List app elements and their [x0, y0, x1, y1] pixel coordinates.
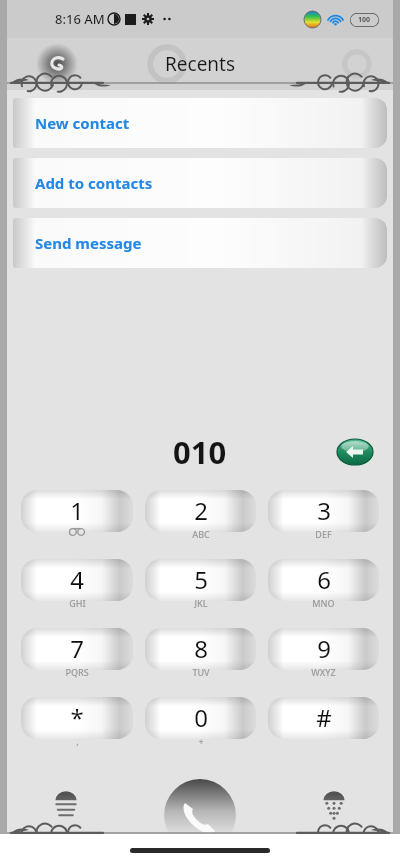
- staticText: 8:16 AM: [55, 10, 105, 28]
- button[interactable]: Backspace: [337, 439, 373, 465]
- staticText: 010: [173, 431, 227, 473]
- staticText: 2: [194, 494, 208, 527]
- button[interactable]: Send message: [13, 218, 387, 268]
- staticText: +: [198, 735, 204, 747]
- staticText: ABC: [192, 528, 210, 540]
- staticText: 100: [358, 15, 371, 25]
- button[interactable]: 5: [145, 559, 256, 611]
- staticText: TUV: [192, 666, 210, 678]
- staticText: *: [70, 701, 84, 734]
- staticText: JKL: [194, 597, 208, 609]
- staticText: 6: [317, 563, 331, 596]
- staticText: Send message: [35, 233, 142, 253]
- staticText: 4: [70, 563, 84, 596]
- staticText: 9: [317, 632, 331, 665]
- button[interactable]: 9: [268, 628, 379, 680]
- button[interactable]: 4: [21, 559, 133, 611]
- staticText: MNO: [312, 597, 335, 609]
- staticText: WXYZ: [311, 666, 336, 678]
- staticText: PQRS: [65, 666, 89, 678]
- staticText: #: [316, 701, 332, 734]
- staticText: Recents: [165, 51, 236, 77]
- button[interactable]: 0: [145, 697, 256, 749]
- button[interactable]: #: [268, 697, 379, 749]
- staticText: 7: [70, 632, 84, 665]
- button[interactable]: 3: [268, 490, 379, 542]
- staticText: 8: [194, 632, 208, 665]
- staticText: Add to contacts: [35, 173, 153, 193]
- button[interactable]: Add to contacts: [13, 158, 387, 208]
- button[interactable]: 7: [21, 628, 133, 680]
- button[interactable]: 6: [268, 559, 379, 611]
- button[interactable]: Keypad: [317, 790, 351, 824]
- button[interactable]: New contact: [13, 98, 387, 148]
- staticText: DEF: [315, 528, 332, 540]
- button[interactable]: 8: [145, 628, 256, 680]
- staticText: New contact: [35, 113, 130, 133]
- button[interactable]: 2: [145, 490, 256, 542]
- button[interactable]: Menu: [49, 790, 83, 824]
- staticText: 1: [70, 494, 84, 527]
- button[interactable]: Call: [161, 776, 239, 854]
- staticText: ,: [76, 735, 79, 747]
- button[interactable]: *: [21, 697, 133, 749]
- button[interactable]: 1: [21, 490, 133, 542]
- button[interactable]: Back: [37, 44, 77, 84]
- staticText: 3: [317, 494, 331, 527]
- staticText: GHI: [69, 597, 86, 609]
- staticText: 0: [194, 701, 208, 734]
- staticText: 5: [194, 563, 208, 596]
